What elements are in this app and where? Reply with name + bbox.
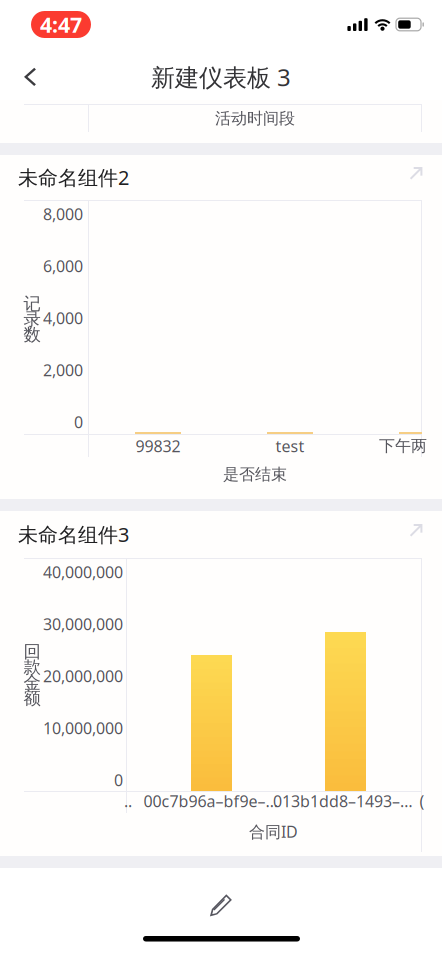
staticText: 回 (23, 641, 40, 662)
staticText: 活动时间段 (215, 109, 295, 128)
staticText: 新建仪表板 3 (151, 61, 291, 93)
staticText: .. (124, 790, 132, 812)
staticText: 40,000,000 (43, 561, 123, 583)
staticText: 是否结束 (223, 465, 287, 484)
staticText: 款 (23, 657, 40, 678)
button[interactable]: 放大 未命名组件2 (400, 158, 432, 188)
staticText: 0 (74, 411, 83, 433)
staticText: 录 (23, 309, 40, 330)
staticText: 20,000,000 (43, 665, 123, 687)
staticText: 额 (23, 688, 40, 709)
staticText: 合同ID (249, 821, 298, 842)
staticText: test (275, 435, 304, 457)
staticText: 记 (23, 293, 40, 314)
button[interactable]: 返回 (8, 56, 52, 98)
staticText: ( (419, 790, 424, 812)
staticText: 0 (114, 769, 123, 791)
button[interactable]: 放大 未命名组件3 (400, 515, 432, 545)
staticText: 金 (23, 672, 40, 693)
staticText: 未命名组件3 (18, 521, 129, 548)
staticText: 数 (23, 324, 40, 345)
staticText: 未命名组件2 (18, 164, 129, 191)
staticText: 下午两 (379, 436, 427, 456)
button[interactable]: 编辑 (197, 883, 245, 927)
staticText: 99832 (135, 435, 180, 457)
staticText: 10,000,000 (43, 717, 123, 739)
staticText: 30,000,000 (43, 613, 123, 635)
staticText: 4,000 (43, 307, 83, 329)
staticText: 00c7b96a–bf9e–… (143, 790, 278, 812)
staticText: 013b1dd8–1493–… (273, 790, 413, 812)
staticText: 4:47 (40, 10, 82, 39)
staticText: 2,000 (43, 359, 83, 381)
staticText: 8,000 (43, 203, 83, 225)
staticText: 6,000 (43, 255, 83, 277)
